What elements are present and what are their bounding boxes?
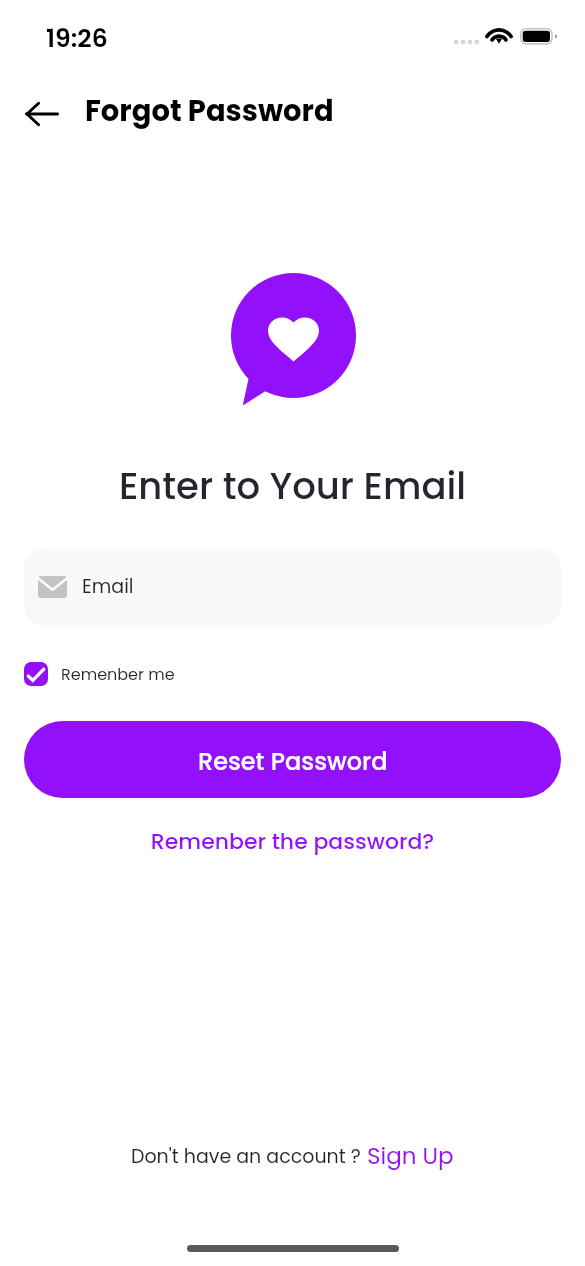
button[interactable]: Reset Password <box>24 721 561 798</box>
button[interactable]: Sign Up <box>367 1140 454 1172</box>
staticText: Remenber me <box>61 663 175 685</box>
staticText: Don't have an account ? <box>131 1143 361 1170</box>
button[interactable]: Email <box>24 548 561 625</box>
staticText: Forgot Password <box>85 91 334 132</box>
button[interactable]: Remenber the password? <box>0 826 585 857</box>
staticText: 19:26 <box>46 21 108 56</box>
staticText: Reset Password <box>198 745 388 779</box>
staticText: Email <box>82 573 134 600</box>
button[interactable]: Remenber me <box>24 662 175 686</box>
staticText: Enter to Your Email <box>0 460 585 512</box>
button[interactable]: Back <box>21 89 62 139</box>
